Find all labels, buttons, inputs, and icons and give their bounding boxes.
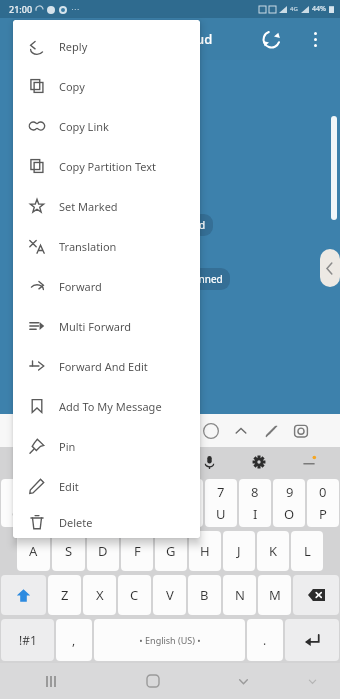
button[interactable]: . xyxy=(247,619,283,661)
button[interactable]: H xyxy=(189,531,221,571)
staticText: Copy Link xyxy=(59,119,109,134)
button[interactable]: V xyxy=(153,575,186,615)
button[interactable]: Scroll xyxy=(320,249,340,287)
staticText: O xyxy=(284,505,295,523)
button[interactable]: Emoji xyxy=(196,416,226,446)
staticText: ⋯ xyxy=(71,5,79,14)
button[interactable]: N xyxy=(223,575,256,615)
button[interactable]: Shift xyxy=(1,575,46,615)
staticText: I xyxy=(253,505,258,523)
staticText: H xyxy=(200,542,210,560)
button[interactable]: 7 xyxy=(205,479,237,527)
button[interactable]: Set Marked xyxy=(13,186,200,226)
button[interactable]: Copy Link xyxy=(13,106,200,146)
button[interactable]: Translation xyxy=(13,226,200,266)
button[interactable]: Reply xyxy=(13,26,200,66)
staticText: N xyxy=(235,586,245,604)
button[interactable]: Recents xyxy=(0,663,102,699)
staticText: P xyxy=(319,505,327,523)
staticText: Reply xyxy=(59,39,88,54)
button[interactable]: 9 xyxy=(273,479,305,527)
button[interactable]: Edit xyxy=(13,466,200,506)
button[interactable]: Camera xyxy=(286,416,316,446)
button[interactable]: Pin xyxy=(13,426,200,466)
button[interactable]: M xyxy=(258,575,291,615)
staticText: , xyxy=(72,632,76,648)
button[interactable]: L xyxy=(291,531,323,571)
staticText: E xyxy=(81,505,89,523)
button[interactable]: 1 xyxy=(1,479,33,527)
button[interactable]: F xyxy=(121,531,153,571)
button[interactable]: 6 xyxy=(171,479,203,527)
button[interactable]: J xyxy=(223,531,255,571)
staticText: Q xyxy=(12,505,23,523)
button[interactable]: • English (US) • xyxy=(94,619,245,661)
button[interactable]: , xyxy=(56,619,92,661)
button[interactable]: D xyxy=(87,531,119,571)
button[interactable]: Forward And Edit xyxy=(13,346,200,386)
button[interactable]: Copy Partition Text xyxy=(13,146,200,186)
button[interactable]: Settings xyxy=(246,449,272,475)
staticText: . xyxy=(263,632,267,648)
button[interactable]: Backspace xyxy=(293,575,339,615)
staticText: S xyxy=(65,542,73,560)
button[interactable]: 3 xyxy=(69,479,101,527)
staticText: G xyxy=(166,542,176,560)
staticText: M xyxy=(269,586,281,604)
staticText: Set Marked xyxy=(59,199,118,214)
staticText: Add To My Message xyxy=(59,399,162,414)
button[interactable]: Forward xyxy=(13,266,200,306)
button[interactable]: 0 xyxy=(307,479,339,527)
button[interactable]: K xyxy=(257,531,289,571)
button[interactable]: Home xyxy=(102,663,203,699)
button[interactable]: Delete xyxy=(13,506,200,538)
button[interactable]: !#1 xyxy=(1,619,54,661)
staticText: 8 xyxy=(251,483,259,501)
staticText: Delete xyxy=(59,515,93,530)
button[interactable]: B xyxy=(188,575,221,615)
button[interactable]: Add To My Message xyxy=(13,386,200,426)
staticText: 9 xyxy=(286,483,294,501)
staticText: Multi Forward xyxy=(59,319,132,334)
button[interactable]: Z xyxy=(48,575,81,615)
staticText: Copy xyxy=(59,79,85,94)
staticText: Edit xyxy=(59,479,79,494)
staticText: Copy Partition Text xyxy=(59,159,157,174)
staticText: 4G xyxy=(290,5,298,13)
staticText: U xyxy=(216,505,226,523)
staticText: Forward xyxy=(59,279,102,294)
button[interactable]: Hide keyboard xyxy=(203,663,284,699)
button[interactable]: X xyxy=(83,575,116,615)
button[interactable]: Attach xyxy=(256,416,286,446)
button[interactable]: Enter xyxy=(285,619,339,661)
button[interactable]: Copy xyxy=(13,66,200,106)
staticText: • English (US) • xyxy=(139,634,201,646)
staticText: L xyxy=(304,542,311,560)
button[interactable]: Refresh xyxy=(254,22,288,56)
button[interactable]: Expand xyxy=(226,416,256,446)
staticText: X xyxy=(96,586,104,604)
button[interactable]: Voice input xyxy=(196,449,222,475)
button[interactable]: C xyxy=(118,575,151,615)
button[interactable]: 2 xyxy=(35,479,67,527)
button[interactable]: Multi Forward xyxy=(13,306,200,346)
staticText: anned xyxy=(193,272,223,286)
button[interactable]: G xyxy=(155,531,187,571)
button[interactable]: S xyxy=(52,531,85,571)
button[interactable]: 8 xyxy=(239,479,271,527)
staticText: d xyxy=(199,218,206,232)
button[interactable]: A xyxy=(17,531,50,571)
button[interactable]: More xyxy=(296,449,322,475)
button[interactable]: More options xyxy=(298,22,332,56)
staticText: 21:00 xyxy=(9,3,33,15)
